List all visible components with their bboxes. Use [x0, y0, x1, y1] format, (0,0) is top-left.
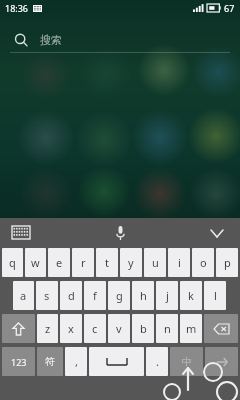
- button[interactable]: 中: [170, 347, 203, 376]
- button[interactable]: r: [72, 248, 94, 277]
- button[interactable]: 符: [37, 347, 63, 376]
- staticText: ,: [75, 354, 78, 369]
- button[interactable]: w: [25, 248, 46, 277]
- staticText: i: [178, 255, 181, 270]
- button[interactable]: ,: [65, 347, 87, 376]
- button[interactable]: 123: [2, 347, 35, 376]
- staticText: d: [68, 288, 75, 303]
- button[interactable]: [89, 347, 144, 376]
- button[interactable]: f: [84, 281, 106, 310]
- button[interactable]: k: [180, 281, 202, 310]
- button[interactable]: Hide keyboard: [208, 224, 226, 242]
- button[interactable]: x: [60, 314, 82, 343]
- staticText: g: [116, 288, 123, 303]
- staticText: r: [81, 255, 86, 270]
- button[interactable]: s: [36, 281, 58, 310]
- button[interactable]: v: [108, 314, 130, 343]
- staticText: t: [105, 255, 109, 270]
- staticText: n: [164, 321, 171, 336]
- staticText: z: [45, 321, 51, 336]
- button[interactable]: y: [120, 248, 142, 277]
- button[interactable]: q: [2, 248, 23, 277]
- staticText: s: [44, 288, 50, 303]
- staticText: l: [214, 288, 217, 303]
- staticText: 67: [224, 2, 235, 14]
- staticText: b: [140, 321, 147, 336]
- button[interactable]: p: [216, 248, 238, 277]
- button[interactable]: l: [204, 281, 226, 310]
- staticText: 中: [182, 355, 192, 368]
- button[interactable]: 搜索: [0, 28, 240, 52]
- staticText: u: [152, 255, 159, 270]
- staticText: 符: [45, 355, 55, 368]
- staticText: f: [93, 288, 97, 303]
- button[interactable]: n: [156, 314, 178, 343]
- staticText: a: [20, 288, 27, 303]
- staticText: p: [224, 255, 231, 270]
- staticText: o: [200, 255, 207, 270]
- button[interactable]: u: [144, 248, 166, 277]
- button[interactable]: j: [156, 281, 178, 310]
- staticText: k: [188, 288, 194, 303]
- button[interactable]: o: [192, 248, 214, 277]
- staticText: 18:36: [5, 2, 29, 14]
- button[interactable]: t: [96, 248, 118, 277]
- staticText: v: [116, 321, 122, 336]
- staticText: 123: [11, 356, 27, 368]
- button[interactable]: z: [37, 314, 58, 343]
- staticText: x: [68, 321, 74, 336]
- button[interactable]: h: [132, 281, 154, 310]
- staticText: m: [186, 321, 197, 336]
- button[interactable]: [2, 314, 35, 343]
- staticText: 搜索: [40, 33, 62, 47]
- staticText: h: [140, 288, 147, 303]
- button[interactable]: .: [146, 347, 168, 376]
- button[interactable]: Voice input: [110, 223, 130, 243]
- staticText: q: [9, 255, 16, 270]
- button[interactable]: g: [108, 281, 130, 310]
- staticText: y: [128, 255, 134, 270]
- button[interactable]: Switch keyboard: [12, 226, 30, 239]
- staticText: e: [56, 255, 63, 270]
- button[interactable]: c: [84, 314, 106, 343]
- button[interactable]: [205, 347, 238, 376]
- staticText: w: [31, 255, 40, 270]
- button[interactable]: i: [168, 248, 190, 277]
- staticText: j: [166, 288, 169, 303]
- button[interactable]: d: [60, 281, 82, 310]
- button[interactable]: a: [13, 281, 34, 310]
- staticText: .: [156, 354, 159, 369]
- button[interactable]: m: [180, 314, 202, 343]
- button[interactable]: e: [48, 248, 70, 277]
- button[interactable]: b: [132, 314, 154, 343]
- button[interactable]: [204, 314, 238, 343]
- staticText: c: [92, 321, 98, 336]
